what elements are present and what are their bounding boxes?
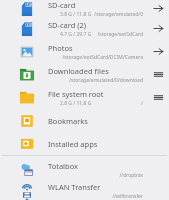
staticText: Installed apps (48, 139, 98, 149)
staticText: SD-card (48, 0, 76, 10)
button[interactable]: Bookmarks (0, 109, 169, 132)
staticText: //wifitransfer (112, 193, 143, 200)
button[interactable]: Downloaded files (0, 63, 169, 86)
staticText: 3.8 G / 11.8 G (60, 11, 92, 17)
staticText: /storage/extSdCard (97, 31, 143, 38)
staticText: /storage/emulated/0/download (69, 77, 143, 84)
staticText: Photos (48, 43, 73, 53)
button[interactable]: SD-card (2) (0, 17, 169, 40)
button[interactable]: More options (147, 63, 169, 86)
button[interactable]: Open (147, 40, 169, 63)
staticText: 2.8 G / 11.8 G (60, 100, 92, 107)
staticText: /storage/extSdCard/DCIM/Camera (62, 54, 143, 61)
button[interactable]: File system root (0, 86, 169, 109)
staticText: / (141, 100, 143, 107)
button[interactable]: Totalbox (0, 158, 169, 181)
staticText: WLAN Transfer (48, 182, 101, 192)
button[interactable]: Installed apps (0, 132, 169, 155)
button[interactable]: More options (147, 86, 169, 109)
button[interactable]: WLAN Transfer (0, 181, 169, 200)
staticText: 4.7 G / 29.7 G (60, 31, 92, 38)
staticText: /storage/emulated/0 (94, 11, 143, 17)
staticText: //dropbox (119, 172, 143, 179)
button[interactable]: Photos (0, 40, 169, 63)
staticText: SD-card (2) (48, 20, 87, 30)
staticText: Totalbox (48, 161, 78, 171)
button[interactable]: Open (147, 17, 169, 40)
staticText: Bookmarks (48, 116, 88, 126)
staticText: File system root (48, 89, 104, 99)
staticText: Downloaded files (48, 66, 109, 76)
button[interactable]: Open (147, 0, 169, 17)
button[interactable]: SD-card (0, 0, 169, 17)
